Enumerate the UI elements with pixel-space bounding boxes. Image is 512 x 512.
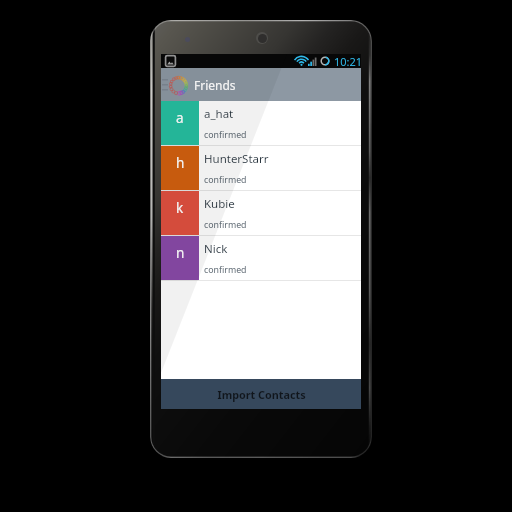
button[interactable]: k — [161, 191, 361, 235]
button[interactable]: Import Contacts — [161, 379, 361, 409]
staticText: Nick — [204, 241, 228, 257]
staticText: h — [176, 154, 185, 172]
staticText: 10:21 — [334, 54, 363, 68]
staticText: n — [176, 244, 185, 262]
staticText: Friends — [194, 77, 236, 93]
staticText: confirmed — [204, 264, 247, 276]
button[interactable]: h — [161, 146, 361, 190]
staticText: confirmed — [204, 219, 247, 231]
button[interactable]: Friends — [161, 68, 361, 101]
button[interactable]: a — [161, 101, 361, 145]
staticText: k — [176, 199, 184, 217]
staticText: HunterStarr — [204, 151, 269, 167]
staticText: confirmed — [204, 129, 247, 141]
staticText: confirmed — [204, 174, 247, 186]
staticText: Import Contacts — [217, 387, 306, 402]
staticText: a — [176, 109, 184, 127]
staticText: Kubie — [204, 196, 235, 212]
button[interactable]: n — [161, 236, 361, 280]
staticText: a_hat — [204, 106, 234, 122]
